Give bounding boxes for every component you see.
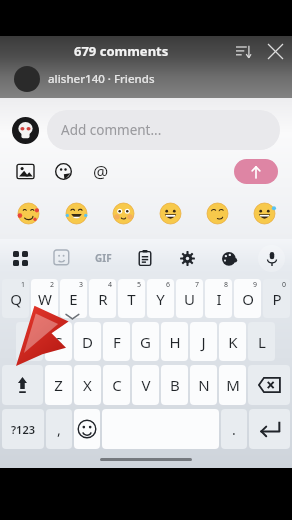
staticText: alisher140 · Friends (48, 71, 155, 87)
button[interactable]: Shift (2, 365, 43, 405)
button[interactable]: W (31, 279, 58, 318)
button[interactable]: R (89, 279, 116, 318)
staticText: T (127, 289, 136, 309)
staticText: 2 (50, 280, 55, 290)
button[interactable]: N (190, 365, 217, 405)
button[interactable] (100, 188, 147, 239)
button[interactable]: Close (258, 36, 292, 66)
button[interactable]: Themes (208, 239, 250, 277)
button[interactable] (52, 188, 100, 239)
staticText: 4 (108, 280, 113, 290)
button[interactable]: Settings (166, 239, 208, 277)
button[interactable]: ?123 (2, 409, 44, 449)
button[interactable]: L (248, 322, 275, 361)
staticText: Add comment... (61, 121, 162, 139)
button[interactable]: F (103, 322, 130, 361)
staticText: 0 (282, 280, 287, 290)
button[interactable]: D (74, 322, 101, 361)
button[interactable]: Emoji (74, 409, 100, 449)
staticText: F (113, 332, 121, 352)
button[interactable]: Q (2, 279, 29, 318)
button[interactable]: Add photo (10, 156, 40, 186)
button[interactable]: Add comment... (47, 110, 280, 150)
staticText: J (201, 332, 206, 352)
button[interactable] (194, 188, 241, 239)
staticText: ?123 (11, 422, 35, 437)
staticText: 6 (166, 280, 171, 290)
button[interactable]: C (103, 365, 130, 405)
staticText: 9 (253, 280, 258, 290)
button[interactable]: M (219, 365, 246, 405)
staticText: Z (54, 375, 63, 395)
button[interactable]: Voice input (258, 245, 285, 272)
button[interactable]: . (221, 409, 247, 449)
button[interactable] (241, 188, 288, 239)
button[interactable]: H (161, 322, 188, 361)
staticText: R (98, 289, 108, 309)
button[interactable]: J (190, 322, 217, 361)
button[interactable]: Z (45, 365, 72, 405)
button[interactable] (147, 188, 194, 239)
button[interactable]: Sort comments (228, 36, 258, 66)
staticText: , (57, 420, 61, 439)
staticText: H (169, 332, 181, 352)
button[interactable]: A (16, 322, 43, 361)
staticText: X (83, 375, 92, 395)
staticText: N (198, 375, 210, 395)
button[interactable]: U (176, 279, 203, 318)
button[interactable]: , (46, 409, 72, 449)
staticText: P (272, 289, 282, 309)
staticText: M (226, 375, 240, 395)
button[interactable]: E (60, 279, 87, 318)
staticText: W (38, 289, 52, 309)
button[interactable]: T (118, 279, 145, 318)
staticText: 3 (79, 280, 84, 290)
button[interactable]: X (74, 365, 101, 405)
staticText: B (170, 375, 180, 395)
button[interactable]: Send (234, 159, 278, 184)
button[interactable]: S (45, 322, 72, 361)
button[interactable]: Apps (0, 239, 41, 277)
staticText: Q (10, 289, 22, 309)
button[interactable]: Sticker (48, 156, 78, 186)
staticText: D (82, 332, 93, 352)
staticText: C (112, 375, 122, 395)
staticText: 5 (137, 280, 142, 290)
staticText: Y (156, 289, 165, 309)
button[interactable]: Y (147, 279, 174, 318)
staticText: L (258, 332, 266, 352)
staticText: S (54, 332, 63, 352)
staticText: U (184, 289, 195, 309)
staticText: G (140, 332, 151, 352)
button[interactable]: O (234, 279, 261, 318)
staticText: 1 (21, 280, 26, 290)
button[interactable]: I (205, 279, 232, 318)
staticText: 679 comments (74, 42, 169, 60)
staticText: . (232, 420, 236, 439)
staticText: E (69, 289, 78, 309)
staticText: I (216, 289, 222, 309)
button[interactable]: B (161, 365, 188, 405)
staticText: 7 (195, 280, 200, 290)
staticText: 8 (224, 280, 229, 290)
staticText: @ (93, 160, 109, 183)
button[interactable]: Backspace (248, 365, 290, 405)
staticText: K (228, 332, 238, 352)
button[interactable]: Enter (249, 409, 290, 449)
staticText: O (242, 289, 254, 309)
button[interactable]: Mention (86, 156, 116, 186)
button[interactable]: Stickers (41, 239, 82, 277)
button[interactable] (4, 188, 52, 239)
button[interactable]: GIF (82, 239, 124, 277)
button[interactable] (12, 117, 39, 144)
button[interactable]: K (219, 322, 246, 361)
staticText: A (25, 332, 35, 352)
button[interactable]: Clipboard (124, 239, 166, 277)
staticText: GIF (95, 251, 112, 265)
staticText: V (141, 375, 151, 395)
button[interactable]: P (263, 279, 290, 318)
button[interactable]: G (132, 322, 159, 361)
button[interactable]: V (132, 365, 159, 405)
